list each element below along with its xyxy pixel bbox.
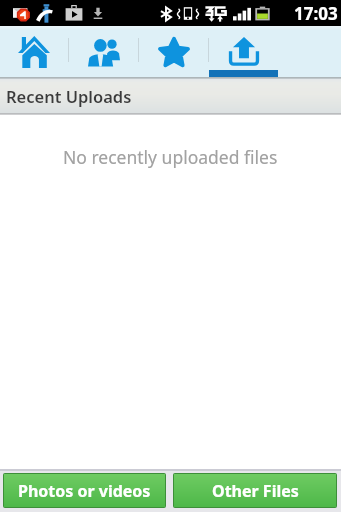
button[interactable]: Favorites	[139, 26, 208, 77]
staticText: Photos or videos	[18, 480, 151, 502]
staticText: Recent Uploads	[6, 85, 132, 107]
staticText: Other Files	[212, 480, 299, 502]
button[interactable]: People	[69, 26, 138, 77]
button[interactable]: Home	[0, 26, 68, 77]
staticText: 17:03	[294, 2, 338, 25]
button[interactable]: Other Files	[174, 474, 336, 507]
button[interactable]: Uploads	[209, 26, 278, 77]
staticText: No recently uploaded files	[63, 145, 278, 169]
button[interactable]: Photos or videos	[4, 474, 165, 507]
